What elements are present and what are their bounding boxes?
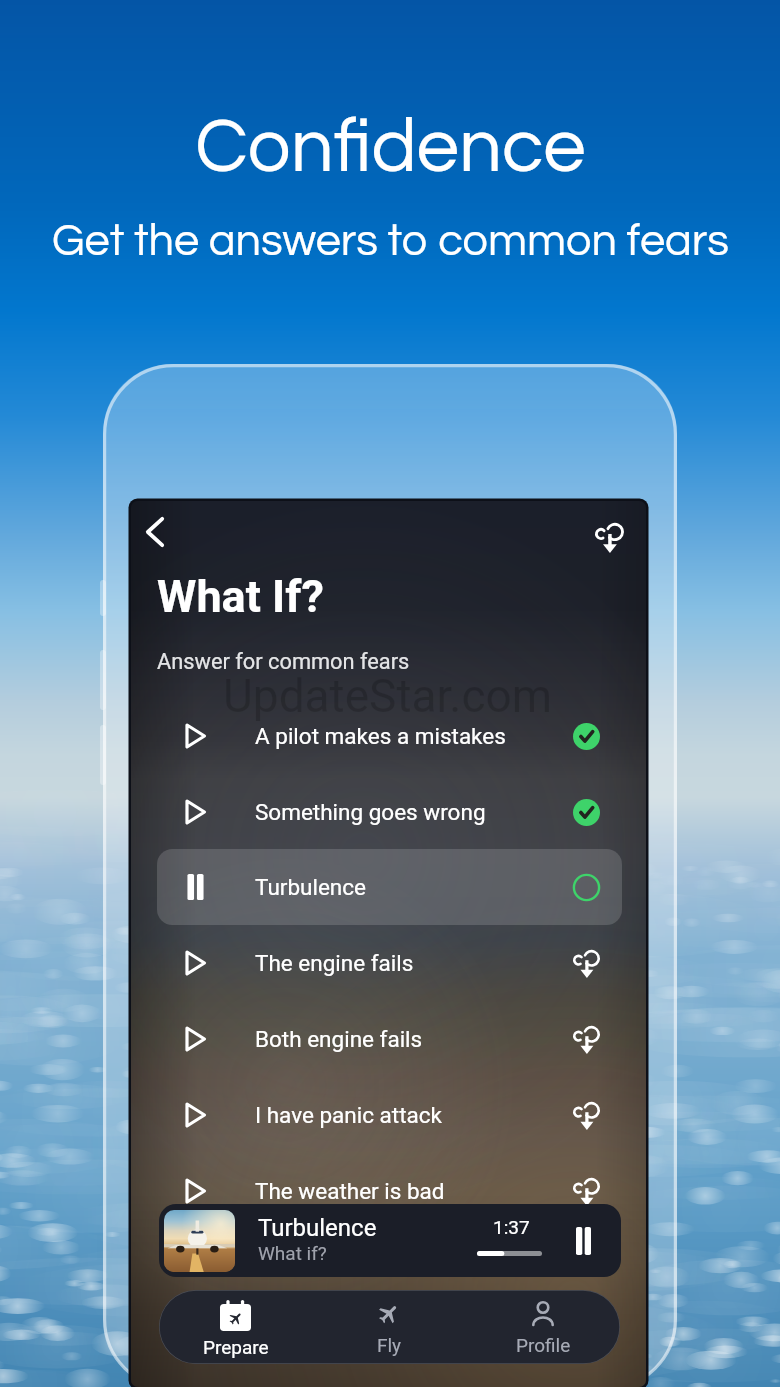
staticText: Turbulence [258, 1214, 377, 1242]
button[interactable]: The weather is bad [157, 1153, 622, 1229]
staticText: What If? [157, 570, 324, 623]
staticText: The engine fails [255, 950, 414, 976]
staticText: What if? [258, 1242, 327, 1264]
button[interactable]: Prepare [159, 1290, 312, 1364]
button[interactable]: Pause [561, 1213, 605, 1269]
staticText: Both engine fails [255, 1026, 423, 1052]
button[interactable]: I have panic attack [157, 1077, 622, 1153]
staticText: UpdateStar.com [223, 669, 553, 723]
staticText: Fly [377, 1334, 402, 1356]
staticText: A pilot makes a mistakes [255, 723, 506, 749]
staticText: 1:37 [493, 1216, 530, 1238]
staticText: Confidence [195, 109, 586, 187]
button[interactable]: Back [131, 508, 179, 556]
staticText: I have panic attack [255, 1102, 442, 1128]
staticText: Something goes wrong [255, 799, 486, 825]
button[interactable]: Turbulence [157, 849, 622, 925]
button[interactable]: Fly [312, 1290, 466, 1364]
staticText: Turbulence [255, 874, 366, 900]
button[interactable]: A pilot makes a mistakes [157, 698, 622, 774]
staticText: Answer for common fears [157, 649, 410, 675]
button[interactable]: Turbulence [159, 1204, 621, 1277]
staticText: Prepare [203, 1336, 269, 1358]
staticText: Get the answers to common fears [52, 218, 729, 264]
button[interactable]: Profile [466, 1290, 620, 1364]
staticText: Profile [516, 1334, 571, 1356]
button[interactable]: The engine fails [157, 925, 622, 1001]
staticText: The weather is bad [255, 1178, 445, 1204]
button[interactable]: Download all [585, 513, 633, 561]
button[interactable]: Both engine fails [157, 1001, 622, 1077]
button[interactable]: Something goes wrong [157, 774, 622, 850]
